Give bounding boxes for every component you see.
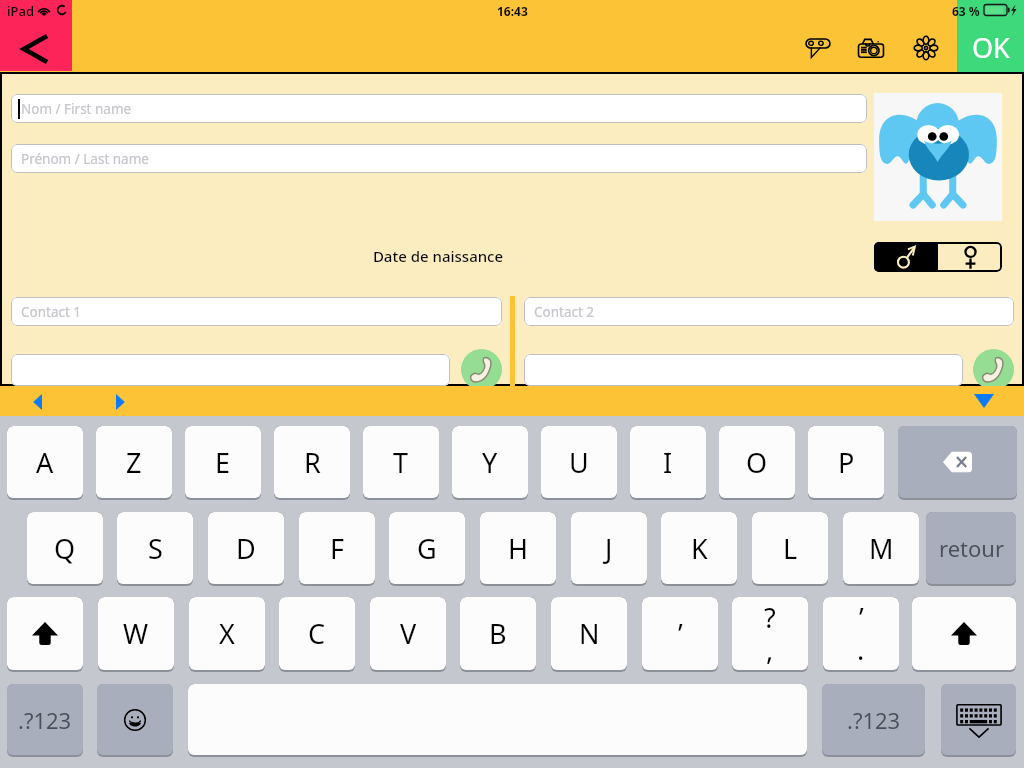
staticText: F — [330, 530, 345, 567]
staticText: D — [236, 530, 256, 567]
button[interactable]: E — [185, 426, 261, 498]
staticText: .?123 — [847, 705, 901, 735]
button[interactable]: Avatar — [874, 93, 1002, 221]
staticText: Contact 2 — [534, 303, 595, 321]
staticText: R — [304, 444, 321, 481]
button[interactable]: A — [7, 426, 83, 498]
staticText: ’ — [859, 599, 864, 636]
staticText: ’ — [678, 615, 683, 652]
button[interactable]: Back — [0, 0, 72, 71]
button[interactable]: K — [661, 512, 737, 584]
staticText: Contact 1 — [21, 303, 82, 321]
staticText: E — [215, 444, 231, 481]
staticText: , — [766, 631, 774, 668]
button[interactable]: Camera — [855, 32, 887, 64]
button[interactable]: Shift — [912, 597, 1016, 670]
button[interactable]: I — [630, 426, 706, 498]
button[interactable]: Call — [973, 349, 1014, 390]
staticText: . — [857, 631, 865, 668]
staticText: ? — [764, 599, 776, 636]
button[interactable]: Hide keyboard — [941, 684, 1016, 755]
button[interactable]: .?123 — [822, 684, 925, 755]
button[interactable]: Contact 2 — [524, 297, 1014, 326]
staticText: OK — [972, 29, 1010, 66]
button[interactable]: Call — [461, 349, 502, 390]
staticText: Z — [126, 444, 142, 481]
button[interactable]: O — [719, 426, 795, 498]
button[interactable]: Nom / First name — [11, 94, 867, 123]
button[interactable]: V — [370, 597, 446, 670]
staticText: K — [691, 530, 708, 567]
button[interactable]: Date de naissance — [2, 246, 874, 266]
button[interactable]: C — [279, 597, 355, 670]
button[interactable]: ’ — [823, 597, 899, 670]
button[interactable]: D — [208, 512, 284, 584]
button[interactable]: Y — [452, 426, 528, 498]
button[interactable]: ’ — [642, 597, 718, 670]
staticText: Nom / First name — [21, 100, 132, 118]
staticText: B — [489, 615, 507, 652]
button[interactable]: S — [117, 512, 193, 584]
button[interactable]: Previous field — [30, 394, 46, 410]
button[interactable]: Next field — [112, 394, 128, 410]
button[interactable]: OK — [957, 0, 1024, 72]
staticText: I — [663, 444, 673, 481]
button[interactable]: G — [389, 512, 465, 584]
button[interactable]: Emoji — [97, 684, 173, 755]
staticText: .?123 — [18, 705, 72, 735]
button[interactable]: B — [460, 597, 536, 670]
button[interactable]: J — [571, 512, 647, 584]
button[interactable]: H — [480, 512, 556, 584]
staticText: G — [417, 530, 437, 567]
staticText: retour — [939, 533, 1004, 563]
button[interactable] — [11, 354, 450, 386]
staticText: W — [123, 615, 149, 652]
staticText: 63 % — [952, 3, 980, 19]
staticText: P — [838, 444, 855, 481]
button[interactable]: Female — [938, 242, 1002, 272]
button[interactable]: Contact 1 — [11, 297, 502, 326]
button[interactable]: U — [541, 426, 617, 498]
button[interactable]: Backspace — [898, 426, 1017, 498]
button[interactable]: X — [189, 597, 265, 670]
staticText: Y — [482, 444, 498, 481]
button[interactable]: T — [363, 426, 439, 498]
staticText: N — [579, 615, 600, 652]
button[interactable]: Hide keyboard — [974, 394, 994, 408]
staticText: U — [569, 444, 589, 481]
button[interactable]: R — [274, 426, 350, 498]
staticText: X — [219, 615, 235, 652]
staticText: L — [783, 530, 798, 567]
staticText: C — [308, 615, 326, 652]
button[interactable]: Shift — [7, 597, 83, 670]
button[interactable]: Z — [96, 426, 172, 498]
staticText: H — [508, 530, 529, 567]
button[interactable]: M — [843, 512, 919, 584]
button[interactable]: P — [808, 426, 884, 498]
staticText: V — [400, 615, 417, 652]
button[interactable]: retour — [926, 512, 1016, 584]
button[interactable]: W — [98, 597, 174, 670]
button[interactable]: Flower — [910, 32, 942, 64]
staticText: A — [36, 444, 54, 481]
button[interactable]: Prénom / Last name — [11, 144, 867, 173]
staticText: Q — [54, 530, 76, 567]
staticText: 16:43 — [497, 3, 528, 19]
staticText: iPad — [7, 2, 34, 20]
button[interactable]: Male — [874, 242, 938, 272]
staticText: T — [393, 444, 409, 481]
button[interactable]: Comment — [802, 32, 834, 64]
staticText: Prénom / Last name — [21, 150, 149, 168]
button[interactable]: F — [299, 512, 375, 584]
button[interactable]: ? — [732, 597, 808, 670]
staticText: M — [869, 530, 894, 567]
button[interactable]: .?123 — [7, 684, 83, 755]
staticText: S — [148, 530, 163, 567]
button[interactable] — [524, 354, 963, 386]
staticText: J — [605, 530, 613, 567]
staticText: O — [746, 444, 768, 481]
button[interactable]: L — [752, 512, 828, 584]
button[interactable]: N — [551, 597, 627, 670]
button[interactable]: Q — [27, 512, 103, 584]
